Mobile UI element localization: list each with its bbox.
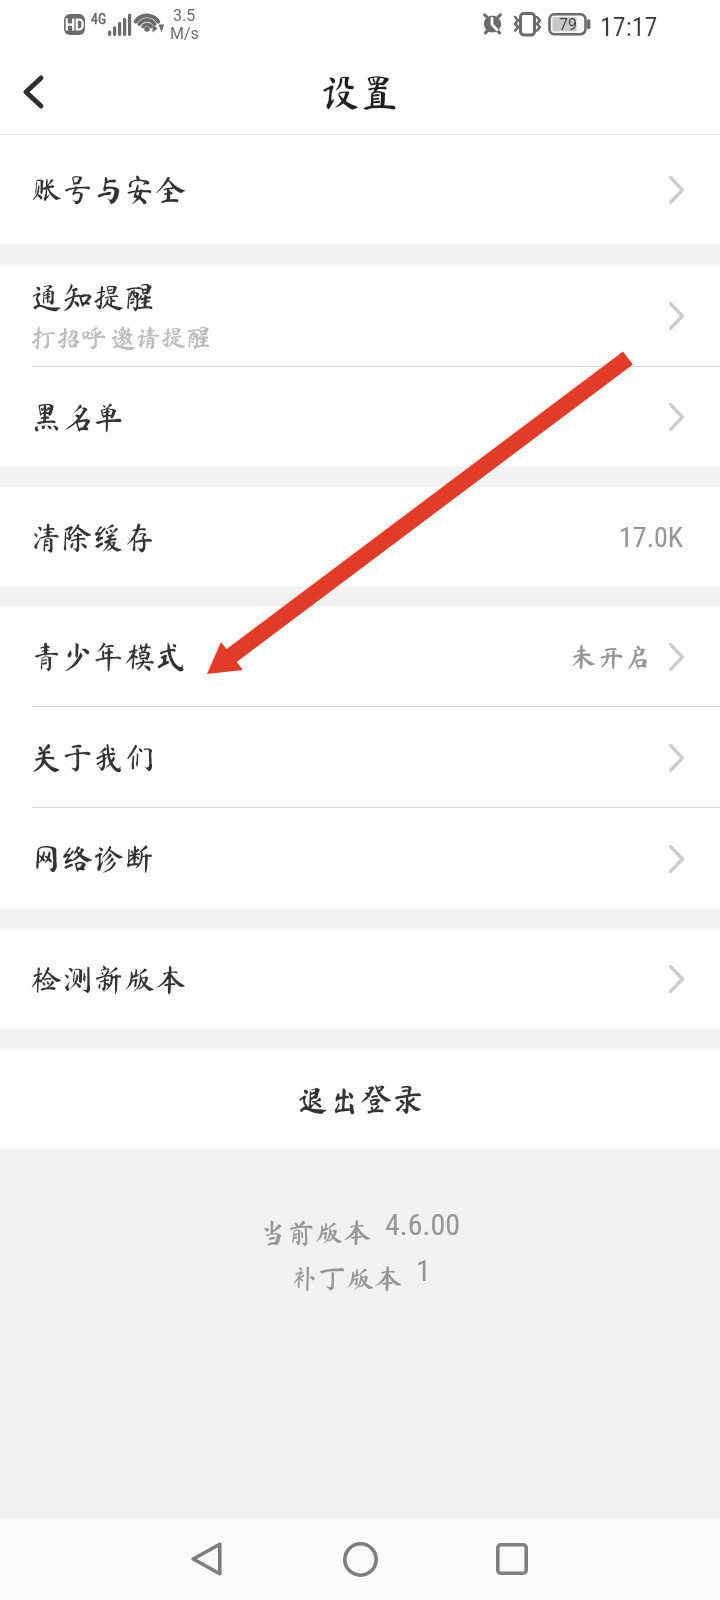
button[interactable]: Back (166, 1519, 246, 1599)
staticText: 黑名单 (31, 402, 124, 433)
staticText: 退出登录 (296, 1083, 425, 1115)
button[interactable]: 退出登录 (0, 1049, 720, 1149)
staticText: 4.6.00 (385, 1207, 461, 1242)
staticText: 17:17 (600, 12, 658, 42)
staticText: 设置 (321, 73, 400, 112)
button[interactable]: 黑名单 (0, 367, 720, 467)
staticText: 检测新版本 (31, 964, 186, 995)
button[interactable]: 网络诊断 (0, 808, 720, 909)
staticText: 补丁版本 (290, 1264, 403, 1292)
button[interactable]: 通知提醒 (0, 265, 720, 367)
button[interactable]: 青少年模式 (0, 606, 720, 707)
staticText: M/s (170, 24, 199, 43)
button[interactable]: Back (3, 65, 63, 125)
button[interactable]: 检测新版本 (0, 929, 720, 1029)
staticText: 打招呼 邀请提醒 (31, 325, 212, 350)
staticText: 17.0K (619, 521, 684, 554)
button[interactable]: 清除缓存 (0, 487, 720, 587)
staticText: 青少年模式 (31, 641, 186, 672)
staticText: HD (65, 17, 85, 33)
button[interactable]: 关于我们 (0, 707, 720, 808)
staticText: 通知提醒 (31, 282, 155, 313)
staticText: 4G (91, 11, 107, 27)
staticText: 关于我们 (31, 742, 155, 773)
staticText: 网络诊断 (31, 843, 155, 874)
staticText: 79 (559, 15, 577, 34)
staticText: 3.5 (173, 6, 196, 25)
staticText: 清除缓存 (31, 522, 155, 553)
button[interactable]: 账号与安全 (0, 135, 720, 244)
staticText: 当前版本 (259, 1218, 372, 1246)
button[interactable]: Home (320, 1519, 400, 1599)
staticText: 账号与安全 (31, 174, 186, 205)
staticText: 1 (416, 1253, 431, 1288)
button[interactable]: Recents (472, 1519, 552, 1599)
staticText: 未开启 (570, 643, 651, 670)
